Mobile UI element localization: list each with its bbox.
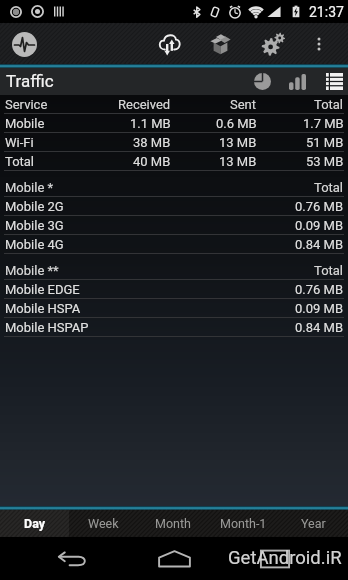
button[interactable]: Pie chart view	[246, 68, 278, 95]
staticText: Mobile EDGE	[5, 282, 80, 297]
button[interactable]: More options	[303, 23, 335, 64]
staticText: Week	[88, 516, 119, 531]
button[interactable]: Month	[138, 510, 208, 537]
staticText: Mobile HSPA	[5, 301, 81, 316]
staticText: 13 MB	[219, 135, 257, 150]
staticText: Mobile	[5, 116, 45, 131]
staticText: Sent	[230, 97, 257, 112]
button[interactable]: Month-1	[208, 510, 278, 537]
staticText: Service	[5, 97, 48, 112]
staticText: GetAndroid.iR	[228, 547, 342, 569]
staticText: Received	[118, 97, 171, 112]
button[interactable]: Settings	[250, 23, 296, 64]
staticText: Mobile HSPAP	[5, 320, 89, 335]
staticText: 0.84 MB	[295, 320, 344, 335]
button[interactable]: Week	[69, 510, 138, 537]
button[interactable]: Year	[278, 510, 348, 537]
button[interactable]: List view	[318, 68, 348, 95]
button[interactable]: Recent apps	[242, 537, 308, 580]
button[interactable]: Applications	[197, 23, 243, 64]
button[interactable]: Back	[39, 537, 105, 580]
staticText: 38 MB	[133, 135, 171, 150]
staticText: Month-1	[220, 516, 267, 531]
staticText: Mobile 4G	[5, 237, 64, 252]
staticText: 0.76 MB	[295, 199, 344, 214]
staticText: 51 MB	[306, 135, 344, 150]
staticText: 21:37	[309, 4, 344, 20]
staticText: Mobile **	[5, 263, 59, 278]
button[interactable]: Sync traffic	[146, 23, 192, 64]
button[interactable]: Traffic app icon	[7, 27, 41, 61]
staticText: 40 MB	[133, 154, 171, 169]
staticText: Total	[314, 97, 344, 112]
button[interactable]: Home	[141, 537, 207, 580]
staticText: 0.84 MB	[295, 237, 344, 252]
staticText: Total	[314, 180, 344, 195]
staticText: Total	[314, 263, 344, 278]
staticText: 1.7 MB	[303, 116, 344, 131]
staticText: 13 MB	[219, 154, 257, 169]
staticText: Mobile *	[5, 180, 54, 195]
staticText: 0.76 MB	[295, 282, 344, 297]
button[interactable]: Day	[0, 510, 69, 537]
staticText: 0.09 MB	[295, 301, 344, 316]
staticText: 53 MB	[306, 154, 344, 169]
staticText: Wi-Fi	[5, 135, 34, 150]
staticText: Total	[5, 154, 35, 169]
button[interactable]: Bar chart view	[281, 68, 313, 95]
staticText: 0.09 MB	[295, 218, 344, 233]
staticText: Traffic	[6, 71, 54, 91]
staticText: Year	[301, 516, 326, 531]
staticText: Mobile 2G	[5, 199, 64, 214]
staticText: 1.1 MB	[130, 116, 171, 131]
staticText: Mobile 3G	[5, 218, 64, 233]
staticText: 0.6 MB	[216, 116, 257, 131]
staticText: Month	[155, 516, 191, 531]
staticText: Day	[24, 516, 46, 531]
